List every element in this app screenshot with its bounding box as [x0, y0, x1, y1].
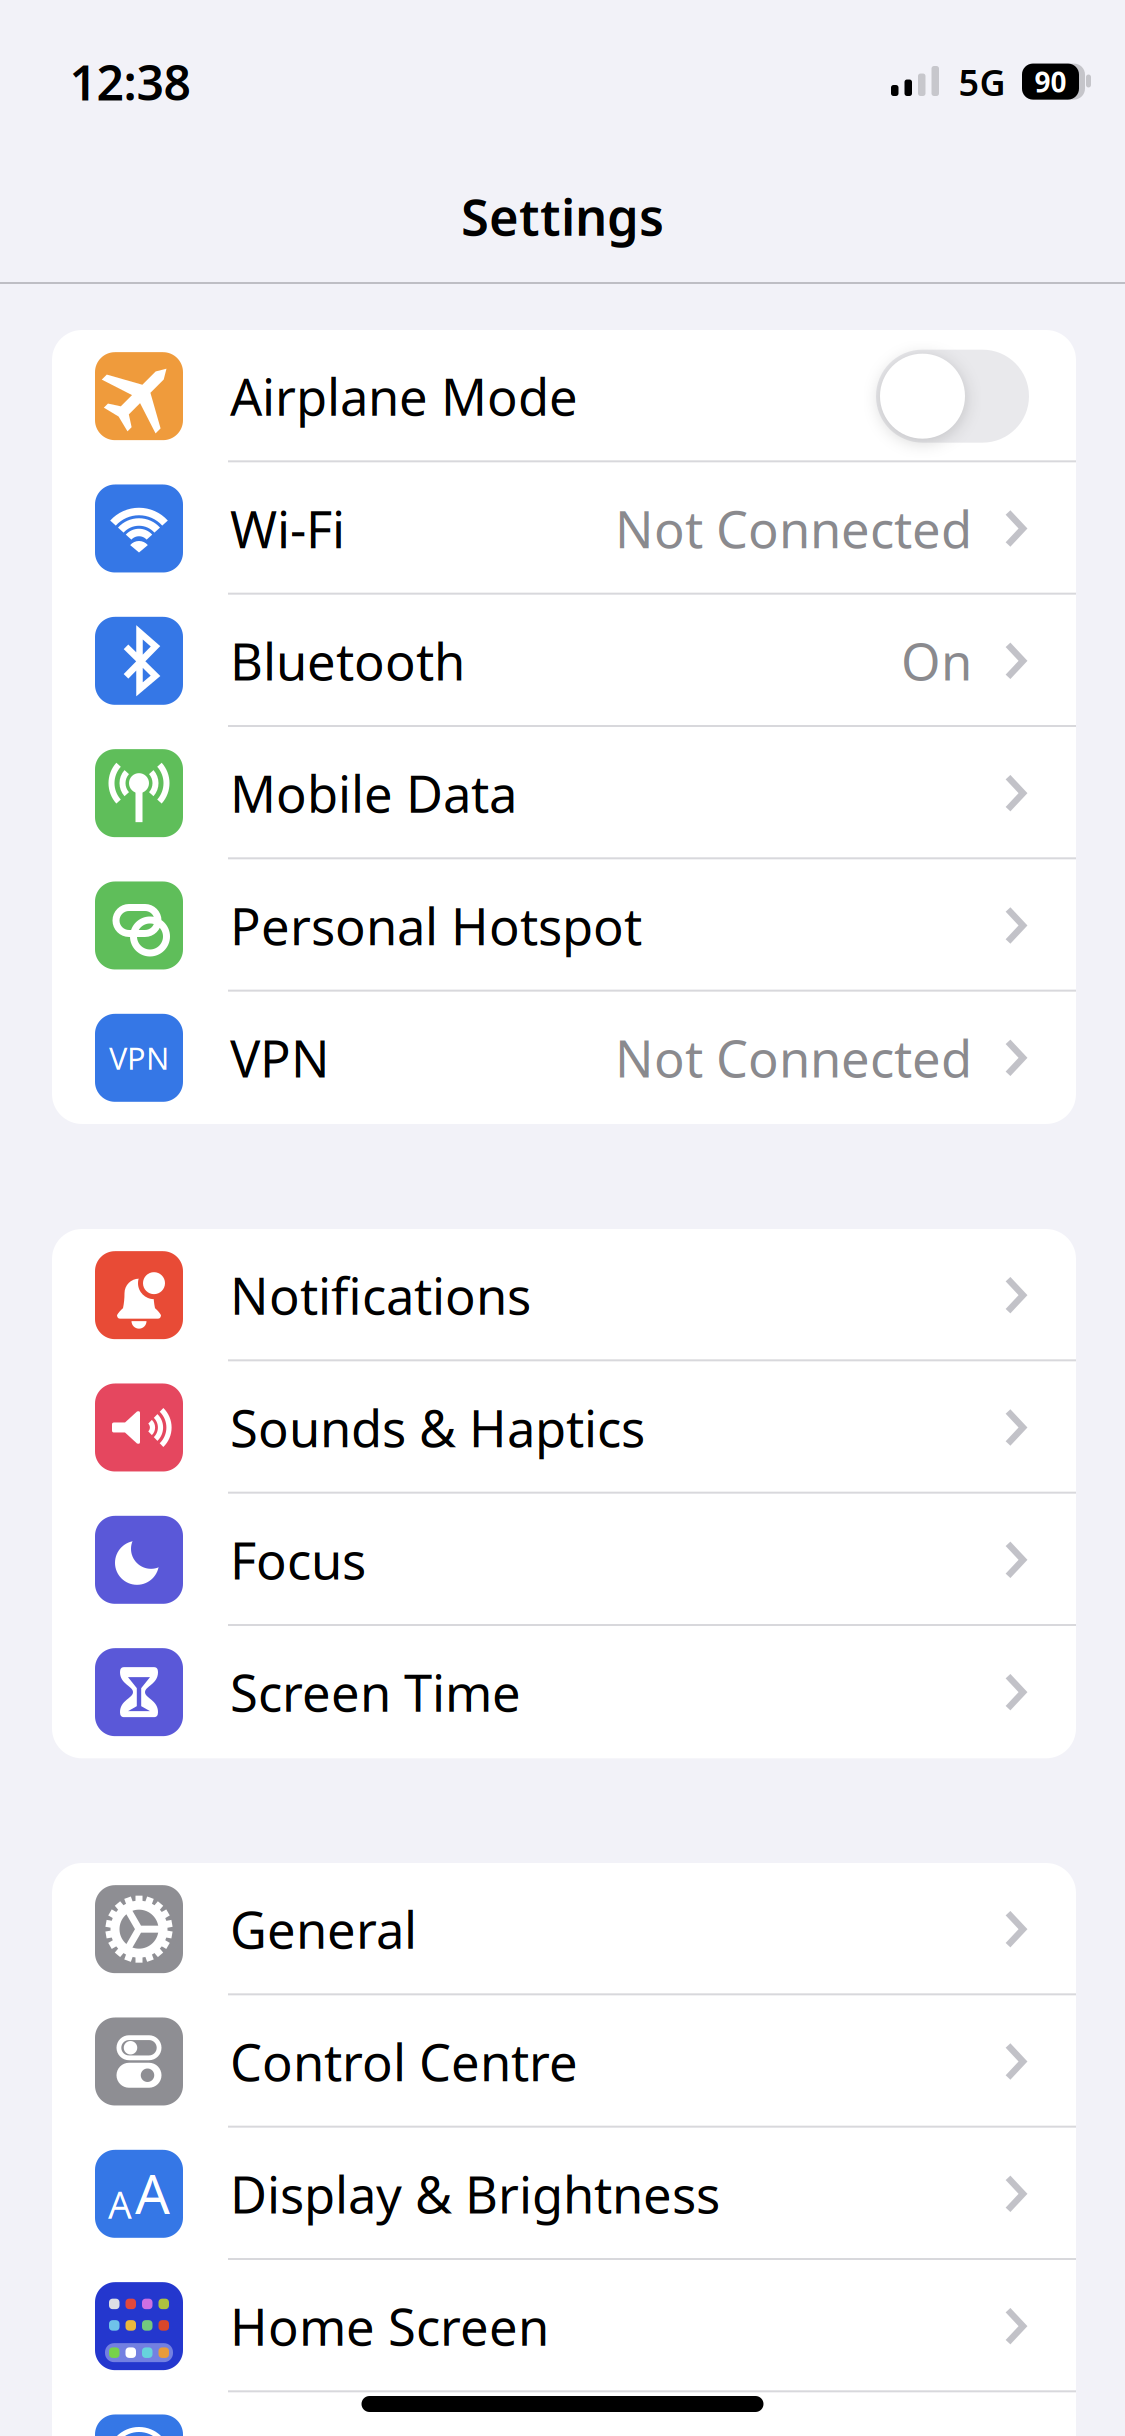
staticText: 12:38: [69, 50, 190, 114]
staticText: A: [108, 2179, 132, 2229]
button[interactable]: Screen Time: [52, 1626, 1076, 1758]
staticText: A: [135, 2156, 170, 2229]
staticText: Home Screen: [230, 2292, 549, 2360]
button[interactable]: Mobile Data: [52, 727, 1076, 859]
staticText: On: [901, 627, 972, 694]
button[interactable]: Home Screen: [52, 2260, 1076, 2392]
button[interactable]: Sounds & Haptics: [52, 1361, 1076, 1494]
staticText: Display & Brightness: [230, 2160, 720, 2227]
staticText: Notifications: [230, 1261, 531, 1329]
button[interactable]: General: [52, 1863, 1076, 1995]
staticText: Settings: [461, 182, 664, 250]
button[interactable]: VPN: [52, 992, 1076, 1124]
staticText: VPN: [109, 1037, 169, 1078]
button[interactable]: Focus: [52, 1494, 1076, 1626]
staticText: VPN: [230, 1024, 330, 1091]
button[interactable]: Wi-Fi: [52, 462, 1076, 595]
staticText: 5G: [958, 58, 1005, 106]
staticText: Focus: [230, 1526, 366, 1593]
staticText: 90: [1034, 63, 1066, 100]
staticText: Bluetooth: [230, 627, 465, 694]
staticText: Mobile Data: [230, 759, 517, 827]
staticText: Personal Hotspot: [230, 892, 642, 959]
staticText: General: [230, 1895, 417, 1963]
staticText: Wi-Fi: [230, 495, 345, 562]
staticText: Airplane Mode: [230, 362, 578, 430]
staticText: Control Centre: [230, 2028, 578, 2095]
staticText: Screen Time: [230, 1658, 521, 1726]
button[interactable]: A: [52, 2128, 1076, 2260]
button[interactable]: Control Centre: [52, 1995, 1076, 2128]
staticText: Not Connected: [615, 1024, 972, 1091]
button[interactable]: Personal Hotspot: [52, 859, 1076, 992]
button[interactable]: Airplane Mode: [876, 350, 1029, 443]
button[interactable]: Bluetooth: [52, 595, 1076, 727]
staticText: Not Connected: [615, 495, 972, 562]
staticText: Sounds & Haptics: [230, 1394, 645, 1461]
button[interactable]: Notifications: [52, 1229, 1076, 1361]
